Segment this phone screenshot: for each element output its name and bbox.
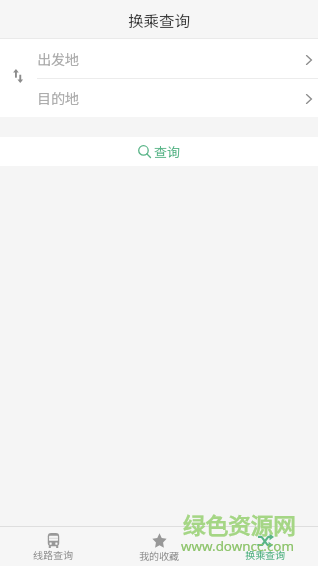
staticText: 换乘查询 — [245, 547, 285, 561]
button[interactable]: 我的收藏 — [106, 527, 212, 566]
button[interactable]: 查询 — [0, 137, 318, 166]
staticText: www.downcc.com — [181, 537, 294, 555]
button[interactable]: 换乘查询 — [212, 527, 318, 566]
button[interactable]: 交换出发地和目的地 — [0, 39, 37, 117]
staticText: 目的地 — [37, 88, 79, 108]
button[interactable]: 出发地 — [0, 39, 318, 78]
staticText: 绿色资源网 — [183, 508, 296, 541]
staticText: 线路查询 — [33, 547, 73, 561]
button[interactable]: 线路查询 — [0, 527, 106, 566]
staticText: 出发地 — [37, 49, 79, 69]
button[interactable]: 目的地 — [0, 79, 318, 117]
staticText: 换乘查询 — [128, 9, 191, 31]
staticText: 查询 — [154, 142, 181, 161]
staticText: 我的收藏 — [139, 548, 179, 562]
